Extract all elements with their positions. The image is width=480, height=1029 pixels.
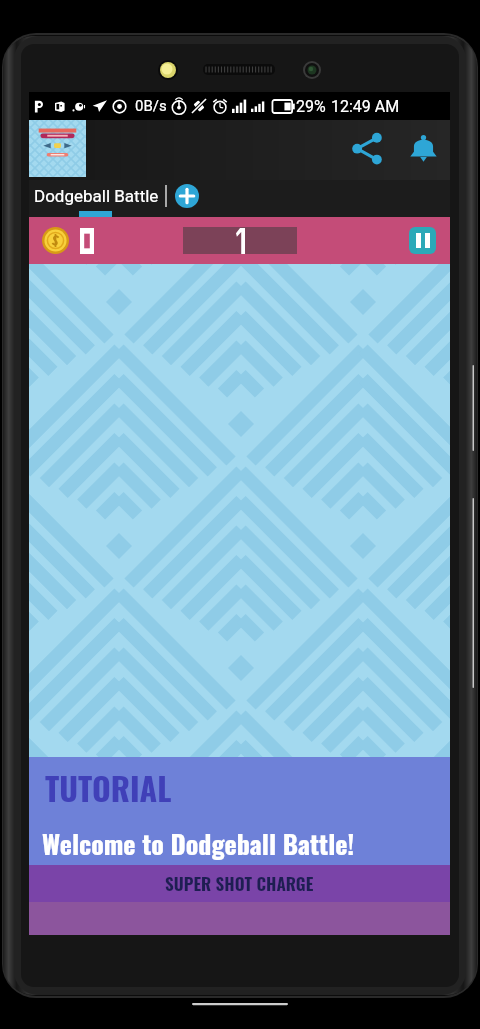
staticText: Dodgeball Battle bbox=[34, 186, 159, 206]
staticText: 29% bbox=[296, 97, 326, 116]
button[interactable]: New tab bbox=[175, 184, 199, 208]
staticText: TUTORIAL bbox=[45, 764, 172, 811]
staticText: 0B/s bbox=[135, 97, 167, 115]
button[interactable]: Pause bbox=[409, 227, 436, 254]
button[interactable]: Share bbox=[344, 125, 390, 171]
staticText: Welcome to Dodgeball Battle! bbox=[42, 824, 355, 863]
staticText: SUPER SHOT CHARGE bbox=[165, 871, 314, 896]
button[interactable]: Dodgeball Battle bbox=[29, 186, 165, 206]
button[interactable]: Notifications bbox=[400, 125, 446, 171]
button[interactable]: Dodgeball Battle app bbox=[29, 120, 86, 177]
staticText: 12:49 AM bbox=[331, 97, 400, 116]
